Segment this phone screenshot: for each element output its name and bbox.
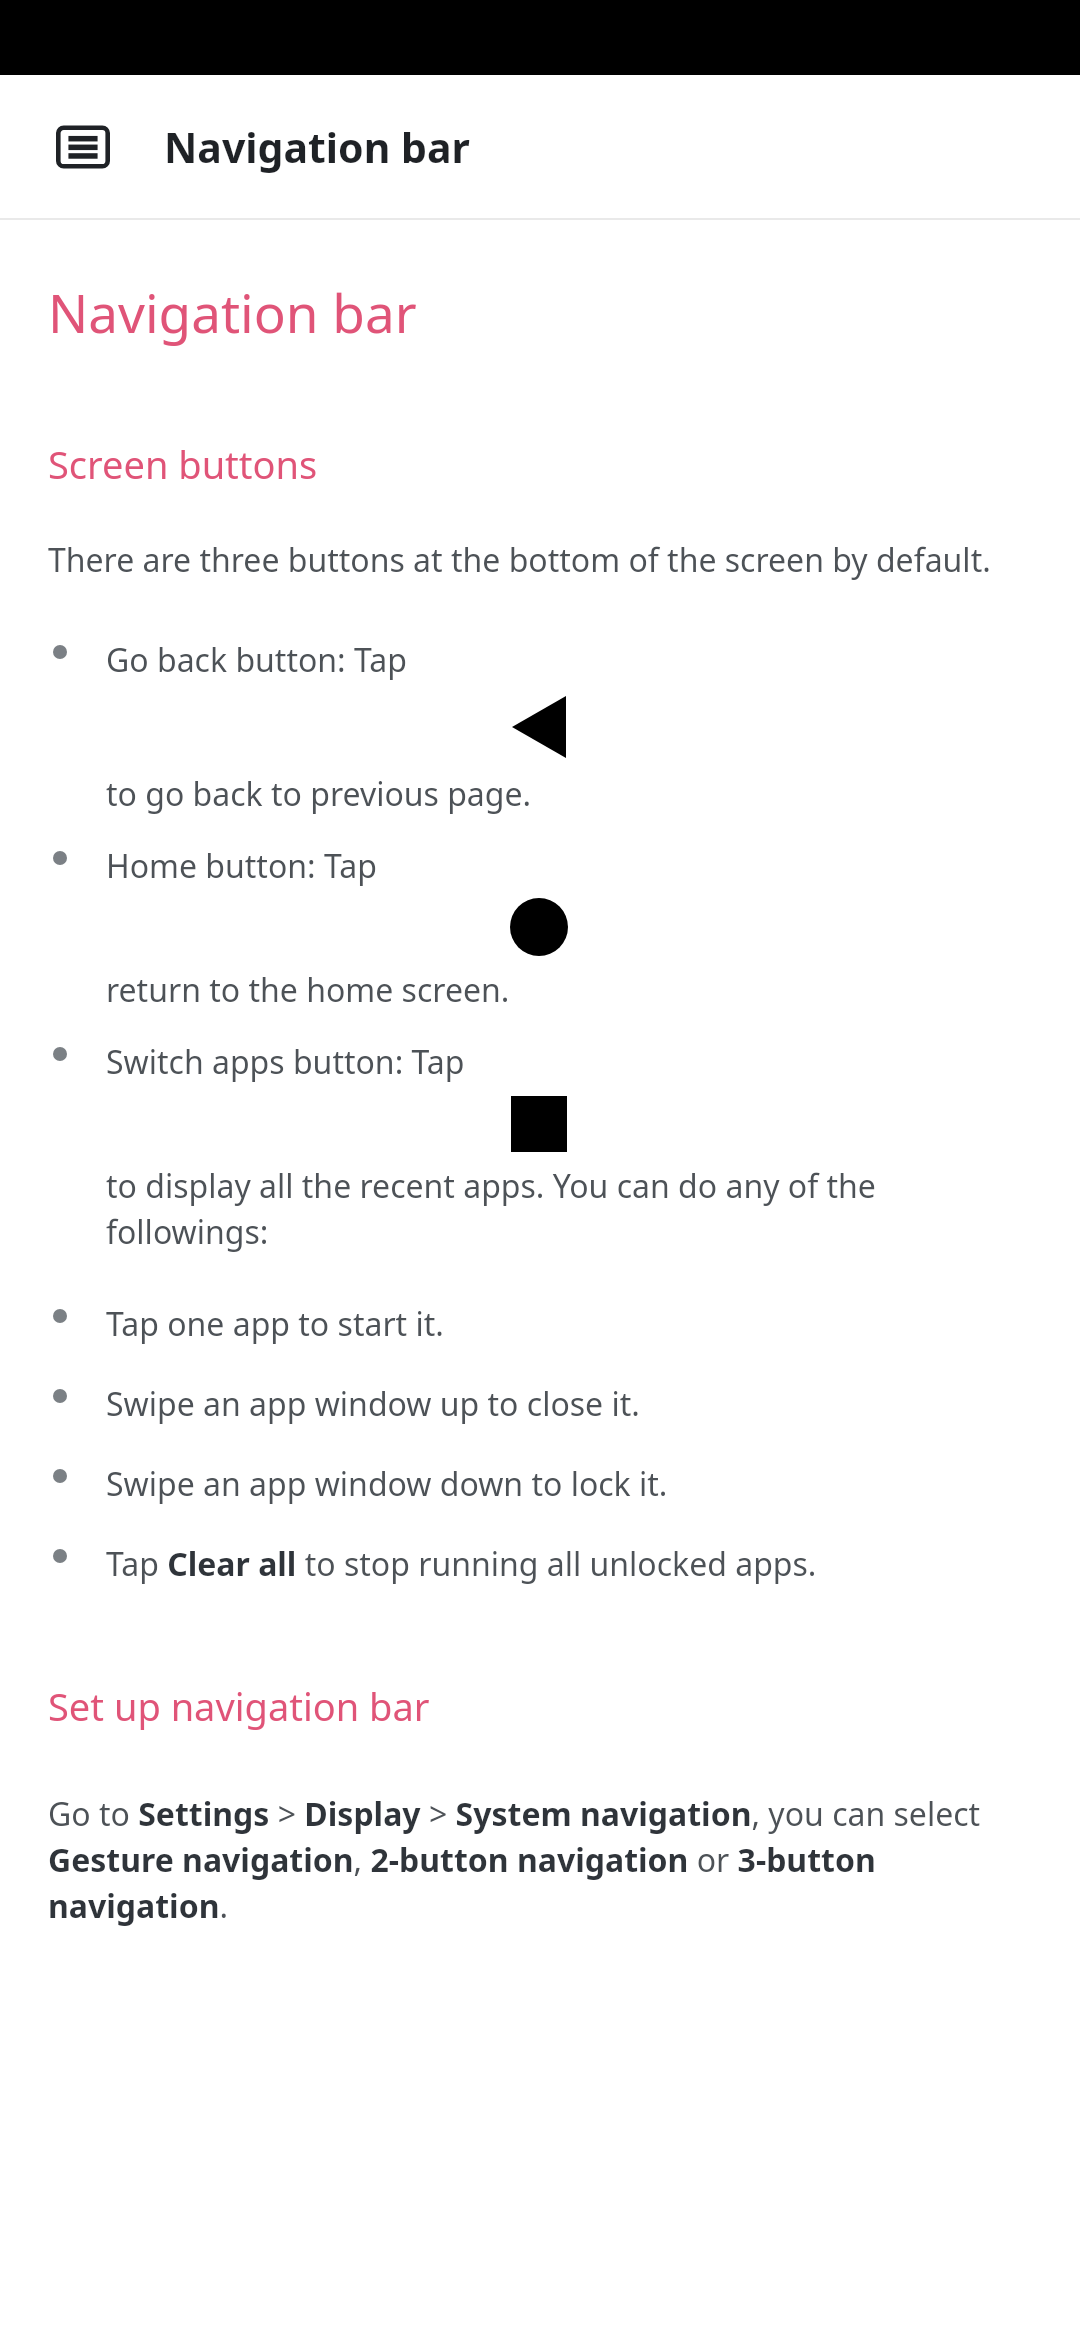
staticText: Tap one app to start it. — [106, 1300, 444, 1346]
staticText: Switch apps button: Tap — [106, 1038, 465, 1084]
staticText: to display all the recent apps. You can … — [106, 1162, 1032, 1254]
button[interactable]: Home button — [510, 898, 568, 956]
staticText: Swipe an app window down to lock it. — [106, 1460, 668, 1506]
staticText: Go to Settings > Display > System naviga… — [48, 1790, 1032, 1928]
staticText: Screen buttons — [48, 438, 318, 490]
staticText: Set up navigation bar — [48, 1680, 430, 1732]
button[interactable]: Go back button — [512, 696, 566, 758]
staticText: to go back to previous page. — [106, 770, 532, 816]
staticText: Swipe an app window up to close it. — [106, 1380, 640, 1426]
staticText: Go back button: Tap — [106, 636, 407, 682]
staticText: Navigation bar — [48, 276, 417, 348]
staticText: return to the home screen. — [106, 966, 510, 1012]
staticText: Tap Clear all to stop running all unlock… — [106, 1540, 817, 1586]
other: Menu — [56, 120, 110, 174]
staticText: Navigation bar — [164, 119, 470, 175]
staticText: Home button: Tap — [106, 842, 377, 888]
button[interactable]: Menu — [0, 75, 1080, 218]
staticText: There are three buttons at the bottom of… — [48, 536, 991, 582]
